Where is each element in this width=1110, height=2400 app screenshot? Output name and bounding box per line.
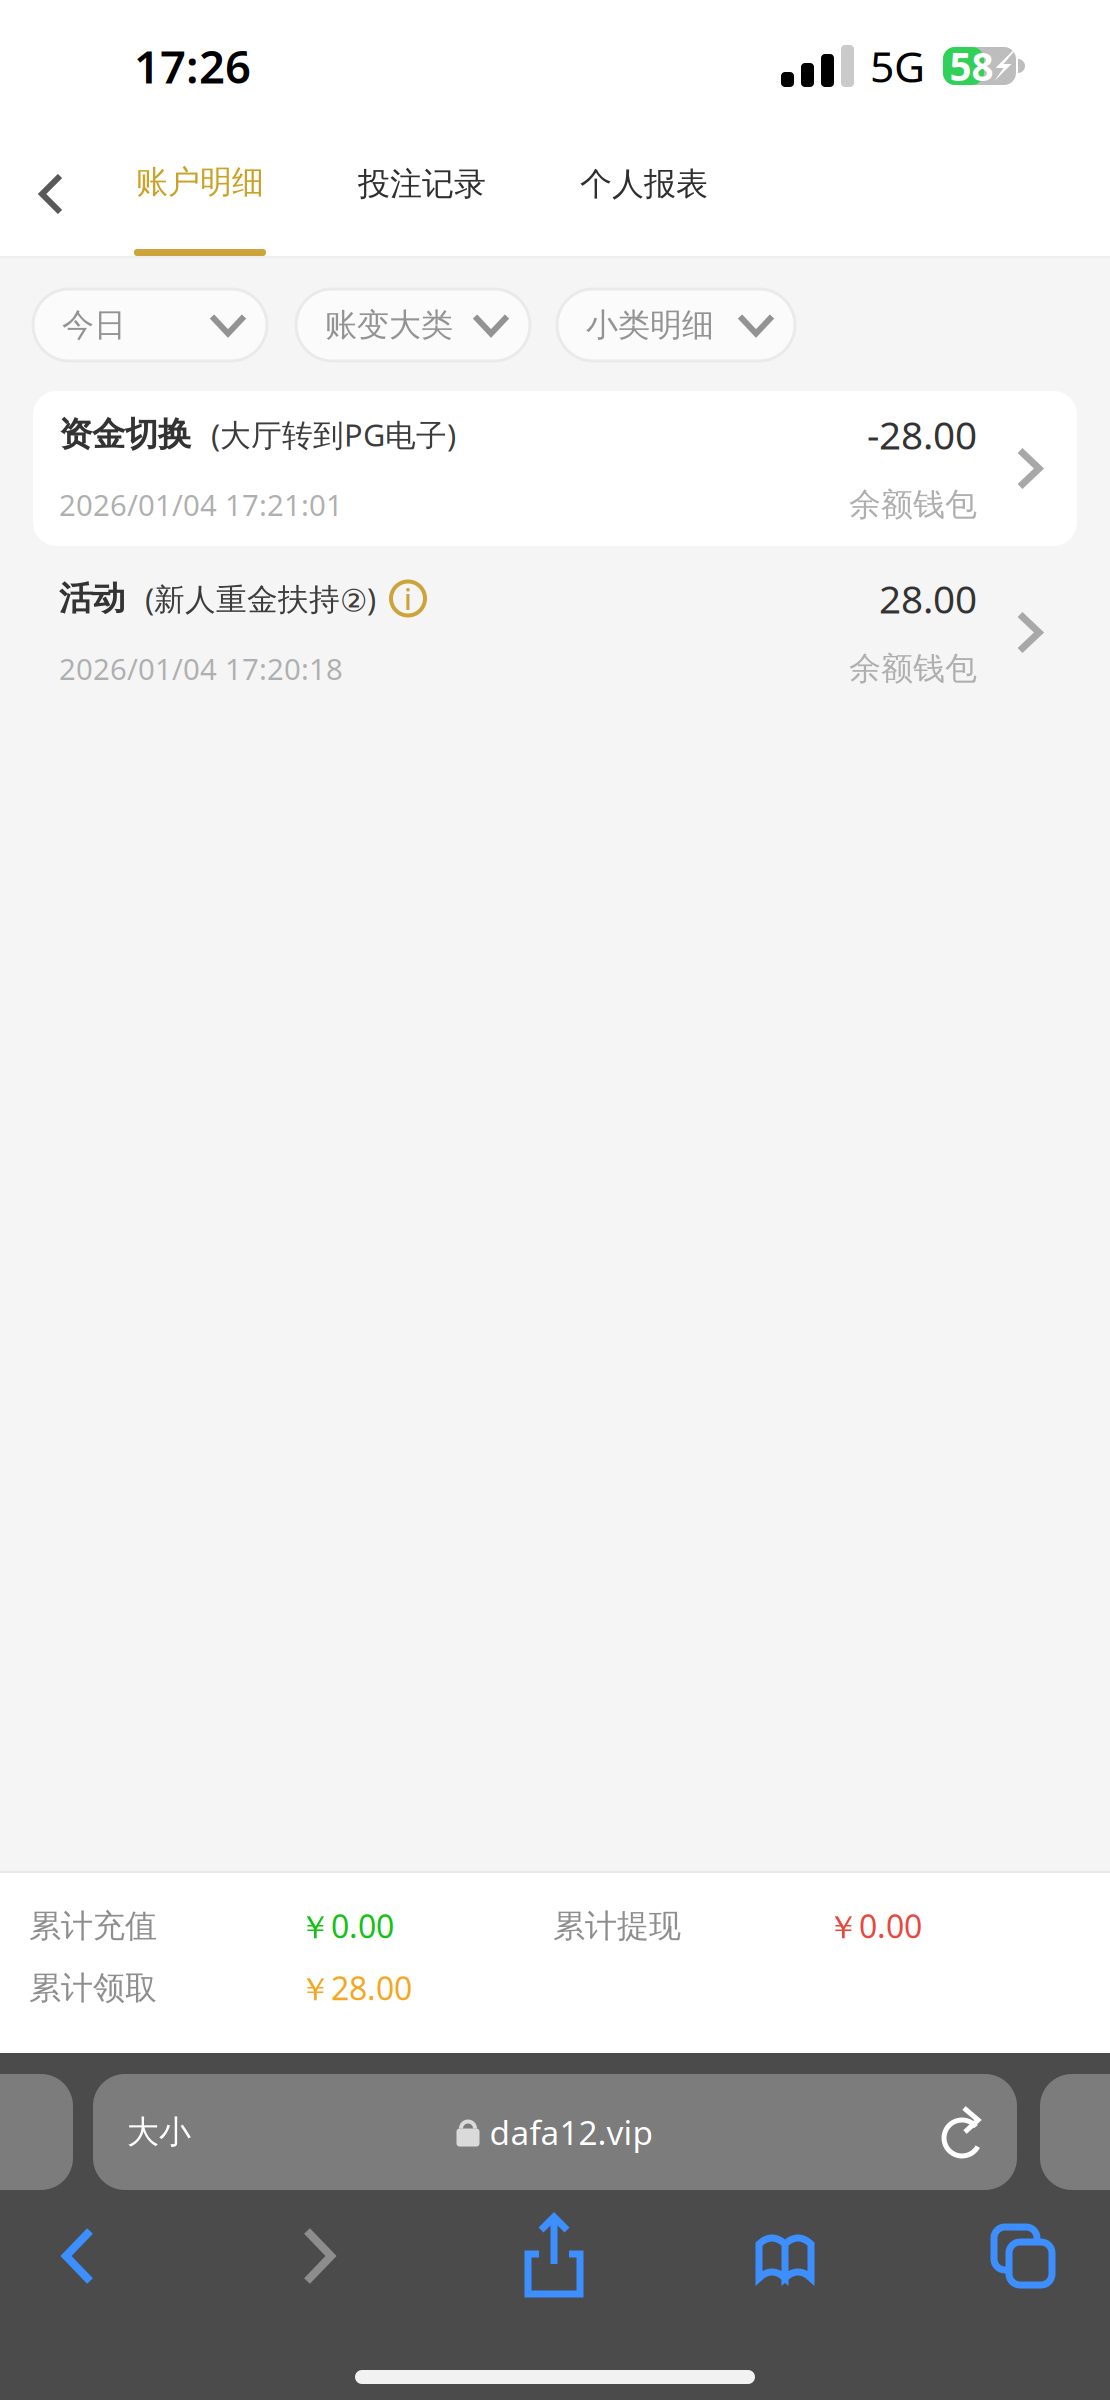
staticText: 余额钱包 bbox=[849, 485, 977, 524]
staticText: 资金切换 bbox=[59, 414, 191, 455]
button[interactable]: 小类明细 bbox=[557, 289, 795, 361]
button[interactable]: Reload bbox=[940, 2074, 1017, 2190]
staticText: 投注记录 bbox=[358, 164, 486, 204]
staticText: 58 bbox=[949, 40, 993, 92]
button[interactable]: Share bbox=[480, 2206, 628, 2306]
staticText: ￥0.00 bbox=[299, 1905, 394, 1947]
staticText: 活动 bbox=[59, 578, 125, 619]
staticText: ￥28.00 bbox=[299, 1967, 412, 2009]
staticText: ￥0.00 bbox=[827, 1905, 922, 1947]
staticText: 2026/01/04 17:20:18 bbox=[59, 649, 343, 688]
staticText: dafa12.vip bbox=[489, 2110, 653, 2154]
staticText: 累计领取 bbox=[29, 1968, 157, 2008]
button[interactable]: Back bbox=[0, 132, 102, 256]
button[interactable]: Bookmarks bbox=[711, 2206, 859, 2306]
staticText: -28.00 bbox=[867, 409, 977, 460]
button[interactable]: 账户明细 bbox=[133, 132, 267, 256]
button[interactable]: Tabs bbox=[949, 2206, 1097, 2306]
staticText: (大厅转到PG电子) bbox=[211, 414, 456, 455]
button[interactable]: 账变大类 bbox=[296, 289, 530, 361]
button[interactable]: 投注记录 bbox=[355, 132, 489, 256]
staticText: 小类明细 bbox=[586, 305, 714, 345]
staticText: 个人报表 bbox=[580, 164, 708, 204]
staticText: 账变大类 bbox=[325, 305, 453, 345]
staticText: 累计充值 bbox=[29, 1906, 157, 1946]
staticText: 17:26 bbox=[134, 36, 251, 96]
staticText: 累计提现 bbox=[553, 1906, 681, 1946]
button[interactable]: 资金切换 bbox=[33, 391, 1077, 546]
staticText: 账户明细 bbox=[136, 162, 264, 202]
staticText: i bbox=[404, 579, 412, 618]
staticText: 今日 bbox=[62, 305, 126, 345]
staticText: 5G bbox=[870, 38, 925, 94]
button[interactable]: 大小 bbox=[93, 2074, 191, 2190]
staticText: (新人重金扶持②) bbox=[145, 578, 376, 619]
staticText: 2026/01/04 17:21:01 bbox=[59, 485, 343, 524]
staticText: 28.00 bbox=[879, 573, 977, 624]
button[interactable]: 今日 bbox=[33, 289, 267, 361]
button[interactable]: Forward bbox=[244, 2206, 392, 2306]
staticText: 余额钱包 bbox=[849, 649, 977, 688]
button[interactable]: 活动 bbox=[33, 555, 1077, 710]
button[interactable]: Back bbox=[5, 2206, 153, 2306]
button[interactable]: 个人报表 bbox=[577, 132, 711, 256]
staticText: 大小 bbox=[127, 2112, 191, 2152]
